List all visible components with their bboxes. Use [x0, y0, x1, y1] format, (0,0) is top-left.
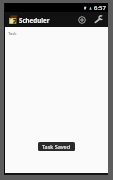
- button[interactable]: Settings: [91, 12, 107, 27]
- button[interactable]: Task Saved: [38, 142, 75, 151]
- staticText: Scheduler: [19, 16, 50, 24]
- staticText: Task: [8, 31, 17, 37]
- staticText: 6:57: [94, 4, 106, 12]
- staticText: Task Saved: [42, 143, 71, 150]
- button[interactable]: Scheduler: [5, 12, 52, 27]
- button[interactable]: Add task: [74, 12, 90, 27]
